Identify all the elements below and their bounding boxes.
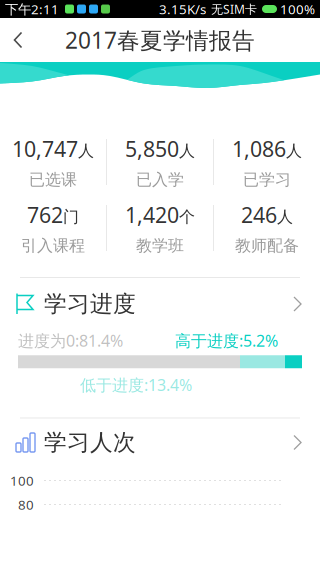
staticText: 下午2:11 (5, 0, 59, 18)
staticText: 2017春夏学情报告 (65, 25, 255, 55)
staticText: 教师配备 (235, 236, 299, 255)
staticText: 人 (286, 141, 302, 161)
staticText: 引入课程 (21, 236, 85, 255)
staticText: 5,850 (125, 134, 179, 163)
staticText: 1,086 (232, 134, 286, 163)
staticText: 10,747 (12, 134, 78, 163)
staticText: 已选课 (29, 170, 77, 189)
staticText: 低于进度:13.4% (80, 374, 192, 395)
staticText: 80 (18, 496, 34, 513)
staticText: 已学习 (243, 170, 291, 189)
staticText: 人 (179, 141, 195, 161)
staticText: 教学班 (136, 236, 184, 255)
staticText: 进度为0:81.4% (18, 330, 123, 351)
staticText: 无SIM卡 (211, 1, 257, 17)
staticText: 学习人次 (44, 429, 136, 456)
staticText: 学习进度 (44, 290, 136, 318)
staticText: 1,420 (125, 200, 179, 229)
staticText: 762 (27, 200, 63, 229)
button[interactable]: 学习人次 (0, 420, 320, 464)
staticText: 个 (179, 207, 195, 227)
button[interactable]: Back (0, 18, 36, 62)
staticText: 已入学 (136, 170, 184, 189)
button[interactable]: 学习进度 (0, 282, 320, 326)
staticText: 人 (78, 141, 94, 161)
staticText: 3.15K/s (159, 0, 206, 18)
staticText: 100 (10, 472, 34, 489)
staticText: 246 (241, 200, 277, 229)
staticText: 人 (277, 207, 293, 227)
staticText: 高于进度:5.2% (175, 330, 278, 351)
staticText: 100% (280, 0, 315, 18)
staticText: 门 (63, 207, 79, 227)
